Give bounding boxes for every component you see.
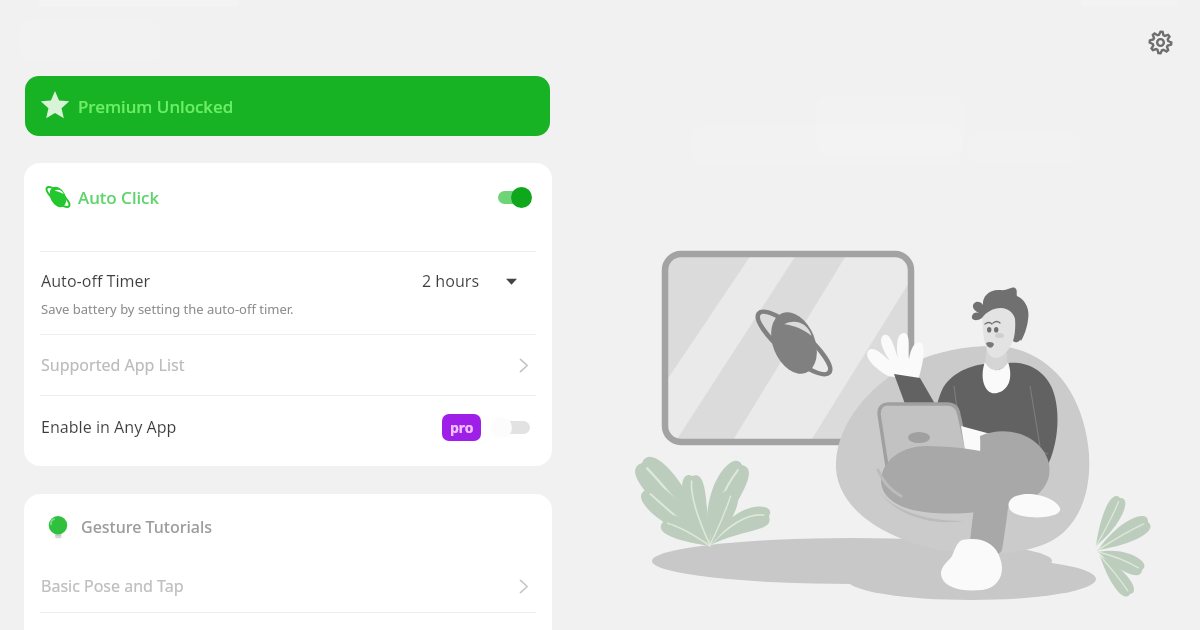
staticText: Auto Click xyxy=(78,186,159,209)
button[interactable]: Toggle enable in any app xyxy=(489,412,533,442)
button[interactable]: Auto Click xyxy=(24,163,552,231)
button[interactable]: pro xyxy=(442,414,481,441)
button[interactable]: Supported App List xyxy=(24,335,552,395)
staticText: Supported App List xyxy=(41,354,185,376)
staticText: Save battery by setting the auto-off tim… xyxy=(41,300,294,318)
button[interactable]: Enable in Any App xyxy=(24,396,552,458)
staticText: 2 hours xyxy=(422,270,480,292)
button[interactable]: Settings xyxy=(1139,21,1181,63)
staticText: Enable in Any App xyxy=(41,416,177,438)
staticText: pro xyxy=(450,418,474,437)
staticText: Auto-off Timer xyxy=(41,270,151,292)
staticText: Basic Pose and Tap xyxy=(41,575,184,597)
staticText: Premium Unlocked xyxy=(78,95,234,118)
staticText: Gesture Tutorials xyxy=(81,516,213,538)
button[interactable]: Toggle service xyxy=(494,182,538,212)
button[interactable]: Premium Unlocked xyxy=(25,76,550,136)
button[interactable]: Basic Pose and Tap xyxy=(24,560,552,612)
button[interactable]: Auto-off Timer xyxy=(24,252,552,334)
